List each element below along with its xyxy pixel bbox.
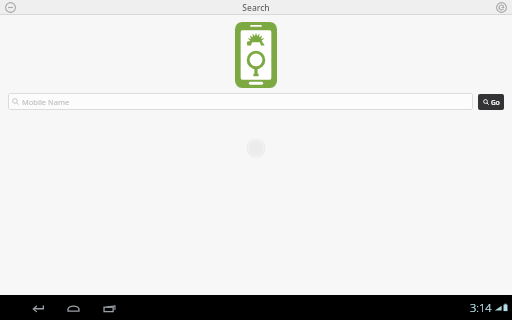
button[interactable]: Menu [4, 1, 17, 14]
staticText: Go [491, 98, 500, 107]
staticText: 3:14 [470, 300, 492, 315]
staticText: Mobile Name [22, 97, 70, 107]
button[interactable]: Back [26, 297, 48, 319]
button[interactable]: Recent apps [98, 297, 120, 319]
button[interactable]: Go [478, 94, 504, 110]
button[interactable]: Home [62, 297, 84, 319]
button[interactable]: Mobile Name [8, 93, 473, 110]
staticText: Search [242, 2, 270, 14]
button[interactable]: Refresh [495, 1, 508, 14]
